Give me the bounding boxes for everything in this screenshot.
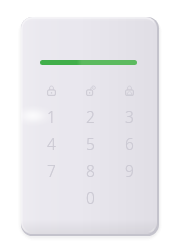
staticText: 3 bbox=[125, 106, 134, 127]
button[interactable]: 3 bbox=[110, 103, 149, 130]
staticText: 9 bbox=[125, 160, 134, 181]
staticText: 8 bbox=[86, 160, 95, 181]
staticText: 4 bbox=[47, 133, 56, 154]
staticText: 6 bbox=[125, 133, 134, 154]
staticText: 2 bbox=[86, 106, 95, 127]
staticText: 1 bbox=[47, 106, 56, 127]
button[interactable]: Disarmed bbox=[71, 79, 110, 102]
button[interactable]: 0 bbox=[71, 184, 110, 211]
staticText: 0 bbox=[86, 187, 95, 208]
button[interactable]: Armed bbox=[32, 79, 71, 102]
staticText: 5 bbox=[86, 133, 95, 154]
button[interactable]: 6 bbox=[110, 130, 149, 157]
button[interactable]: 8 bbox=[71, 157, 110, 184]
button[interactable]: 1 bbox=[32, 103, 71, 130]
button[interactable]: Night mode bbox=[110, 79, 149, 102]
button[interactable]: 7 bbox=[32, 157, 71, 184]
button[interactable]: 2 bbox=[71, 103, 110, 130]
button[interactable]: 5 bbox=[71, 130, 110, 157]
button[interactable]: 4 bbox=[32, 130, 71, 157]
button[interactable]: 9 bbox=[110, 157, 149, 184]
staticText: 7 bbox=[47, 160, 56, 181]
